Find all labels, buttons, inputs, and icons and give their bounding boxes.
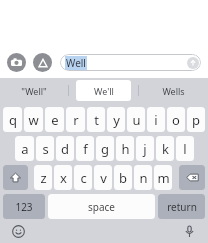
button[interactable]: m — [154, 165, 172, 190]
staticText: n — [139, 169, 148, 187]
button[interactable]: q — [3, 107, 22, 132]
button[interactable]: Send — [187, 57, 199, 69]
staticText: "Well" — [21, 85, 47, 97]
staticText: i — [154, 111, 158, 129]
button[interactable]: "Well" — [7, 80, 61, 101]
staticText: a — [21, 140, 29, 158]
staticText: d — [61, 140, 69, 158]
staticText: Well — [66, 56, 86, 70]
button[interactable]: Backspace — [179, 165, 205, 190]
button[interactable]: y — [107, 107, 125, 132]
staticText: x — [60, 169, 67, 187]
staticText: space — [88, 200, 115, 214]
button[interactable]: Dictation — [181, 223, 198, 240]
button[interactable]: f — [76, 136, 94, 161]
button[interactable]: v — [94, 165, 112, 190]
staticText: t — [94, 111, 99, 129]
button[interactable]: u — [127, 107, 145, 132]
staticText: Wells — [162, 85, 185, 97]
staticText: c — [80, 169, 87, 187]
staticText: 123 — [15, 200, 33, 214]
button[interactable]: Well — [60, 54, 201, 71]
button[interactable]: App Store — [33, 53, 52, 72]
staticText: return — [167, 200, 197, 214]
button[interactable]: Wells — [146, 80, 201, 101]
button[interactable]: b — [114, 165, 132, 190]
staticText: j — [143, 140, 147, 158]
button[interactable]: space — [48, 194, 155, 219]
button[interactable]: z — [34, 165, 52, 190]
staticText: b — [119, 169, 127, 187]
staticText: p — [192, 111, 200, 129]
button[interactable]: h — [116, 136, 134, 161]
button[interactable]: e — [45, 107, 64, 132]
button[interactable]: a — [15, 136, 34, 161]
staticText: m — [157, 169, 170, 187]
staticText: s — [42, 140, 49, 158]
button[interactable]: x — [54, 165, 72, 190]
button[interactable]: w — [24, 107, 43, 132]
staticText: o — [172, 111, 180, 129]
staticText: h — [121, 140, 130, 158]
staticText: l — [183, 140, 187, 158]
staticText: u — [132, 111, 141, 129]
staticText: r — [73, 111, 79, 129]
staticText: q — [9, 111, 17, 129]
button[interactable]: return — [158, 194, 205, 219]
staticText: w — [28, 111, 39, 129]
button[interactable]: k — [156, 136, 174, 161]
staticText: z — [40, 169, 47, 187]
staticText: v — [100, 169, 107, 187]
button[interactable]: r — [66, 107, 85, 132]
button[interactable]: Emoji — [10, 223, 27, 240]
button[interactable]: d — [56, 136, 74, 161]
button[interactable]: c — [74, 165, 92, 190]
button[interactable]: s — [36, 136, 54, 161]
button[interactable]: t — [87, 107, 105, 132]
button[interactable]: i — [147, 107, 165, 132]
button[interactable]: n — [134, 165, 152, 190]
staticText: e — [51, 111, 59, 129]
staticText: k — [162, 140, 169, 158]
button[interactable]: o — [167, 107, 185, 132]
button[interactable]: g — [96, 136, 114, 161]
staticText: We'll — [94, 85, 114, 97]
staticText: g — [101, 140, 109, 158]
button[interactable]: 123 — [3, 194, 45, 219]
button[interactable]: We'll — [76, 80, 131, 101]
staticText: y — [113, 111, 120, 129]
button[interactable]: p — [187, 107, 205, 132]
button[interactable]: l — [176, 136, 194, 161]
button[interactable]: Camera — [7, 53, 26, 72]
button[interactable]: j — [136, 136, 154, 161]
button[interactable]: Shift — [3, 165, 28, 190]
staticText: f — [83, 140, 88, 158]
